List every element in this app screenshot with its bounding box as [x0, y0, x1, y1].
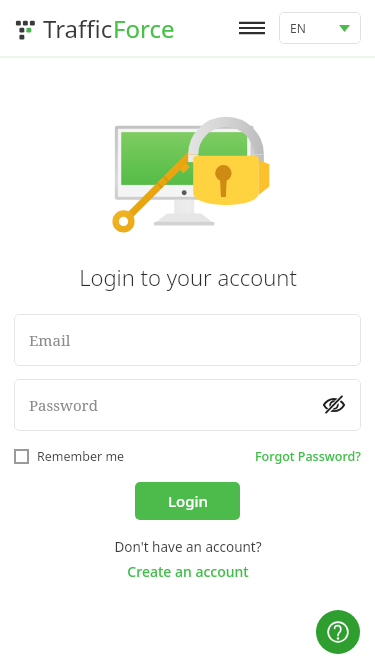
button[interactable]: Forgot Password? — [255, 445, 361, 468]
staticText: Login — [168, 491, 208, 511]
staticText: Login to your account — [79, 262, 297, 292]
button[interactable]: Create an account — [123, 561, 253, 582]
button[interactable]: Menu — [231, 7, 273, 49]
button[interactable]: Remember me — [14, 445, 125, 468]
button[interactable]: Login — [135, 482, 240, 520]
staticText: EN — [290, 20, 306, 36]
staticText: Don't have an account? — [114, 538, 262, 556]
button[interactable]: Help — [316, 610, 360, 654]
staticText: Traffic — [43, 12, 113, 45]
button[interactable]: EN — [279, 12, 361, 44]
staticText: Email — [29, 330, 71, 350]
staticText: Force — [113, 12, 175, 45]
staticText: Password — [29, 395, 98, 415]
staticText: Forgot Password? — [255, 448, 361, 465]
staticText: Remember me — [37, 448, 125, 465]
button[interactable]: TrafficForce home — [14, 12, 175, 45]
staticText: Create an account — [127, 562, 249, 581]
button[interactable]: Show password — [317, 388, 351, 422]
button[interactable]: Email — [14, 314, 361, 366]
button[interactable]: Password — [14, 379, 361, 431]
